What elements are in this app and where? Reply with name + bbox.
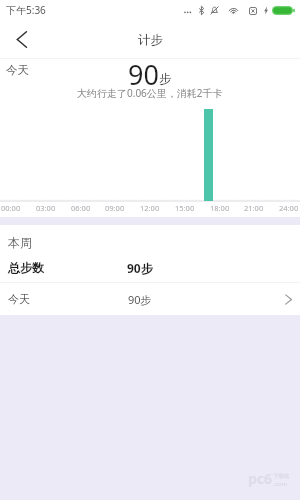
staticText: 下午5:36 (6, 3, 46, 17)
staticText: 24:00 (279, 203, 299, 213)
staticText: .com (273, 480, 288, 488)
staticText: 09:00 (105, 203, 125, 213)
staticText: 90步 (127, 260, 153, 276)
staticText: 18:00 (210, 203, 230, 213)
staticText: 06:00 (71, 203, 91, 213)
staticText: 总步数 (8, 260, 44, 275)
staticText: 21:00 (244, 203, 264, 213)
staticText: 本周 (8, 235, 32, 250)
staticText: 15:00 (175, 203, 195, 213)
staticText: 12:00 (140, 203, 160, 213)
button[interactable]: 总步数 (0, 253, 300, 282)
staticText: 00:00 (1, 203, 21, 213)
staticText: 步 (159, 71, 172, 87)
staticText: 90 (128, 56, 159, 93)
staticText: pc6 (248, 469, 273, 488)
staticText: 下载站 (273, 473, 290, 480)
staticText: 90步 (128, 292, 152, 307)
button[interactable]: Back (0, 21, 38, 59)
staticText: 大约行走了0.06公里，消耗2千卡 (77, 86, 223, 100)
staticText: 03:00 (36, 203, 56, 213)
staticText: 今天 (8, 292, 30, 306)
staticText: 计步 (138, 32, 163, 48)
button[interactable]: 今天 (0, 283, 300, 315)
staticText: 今天 (6, 63, 29, 77)
